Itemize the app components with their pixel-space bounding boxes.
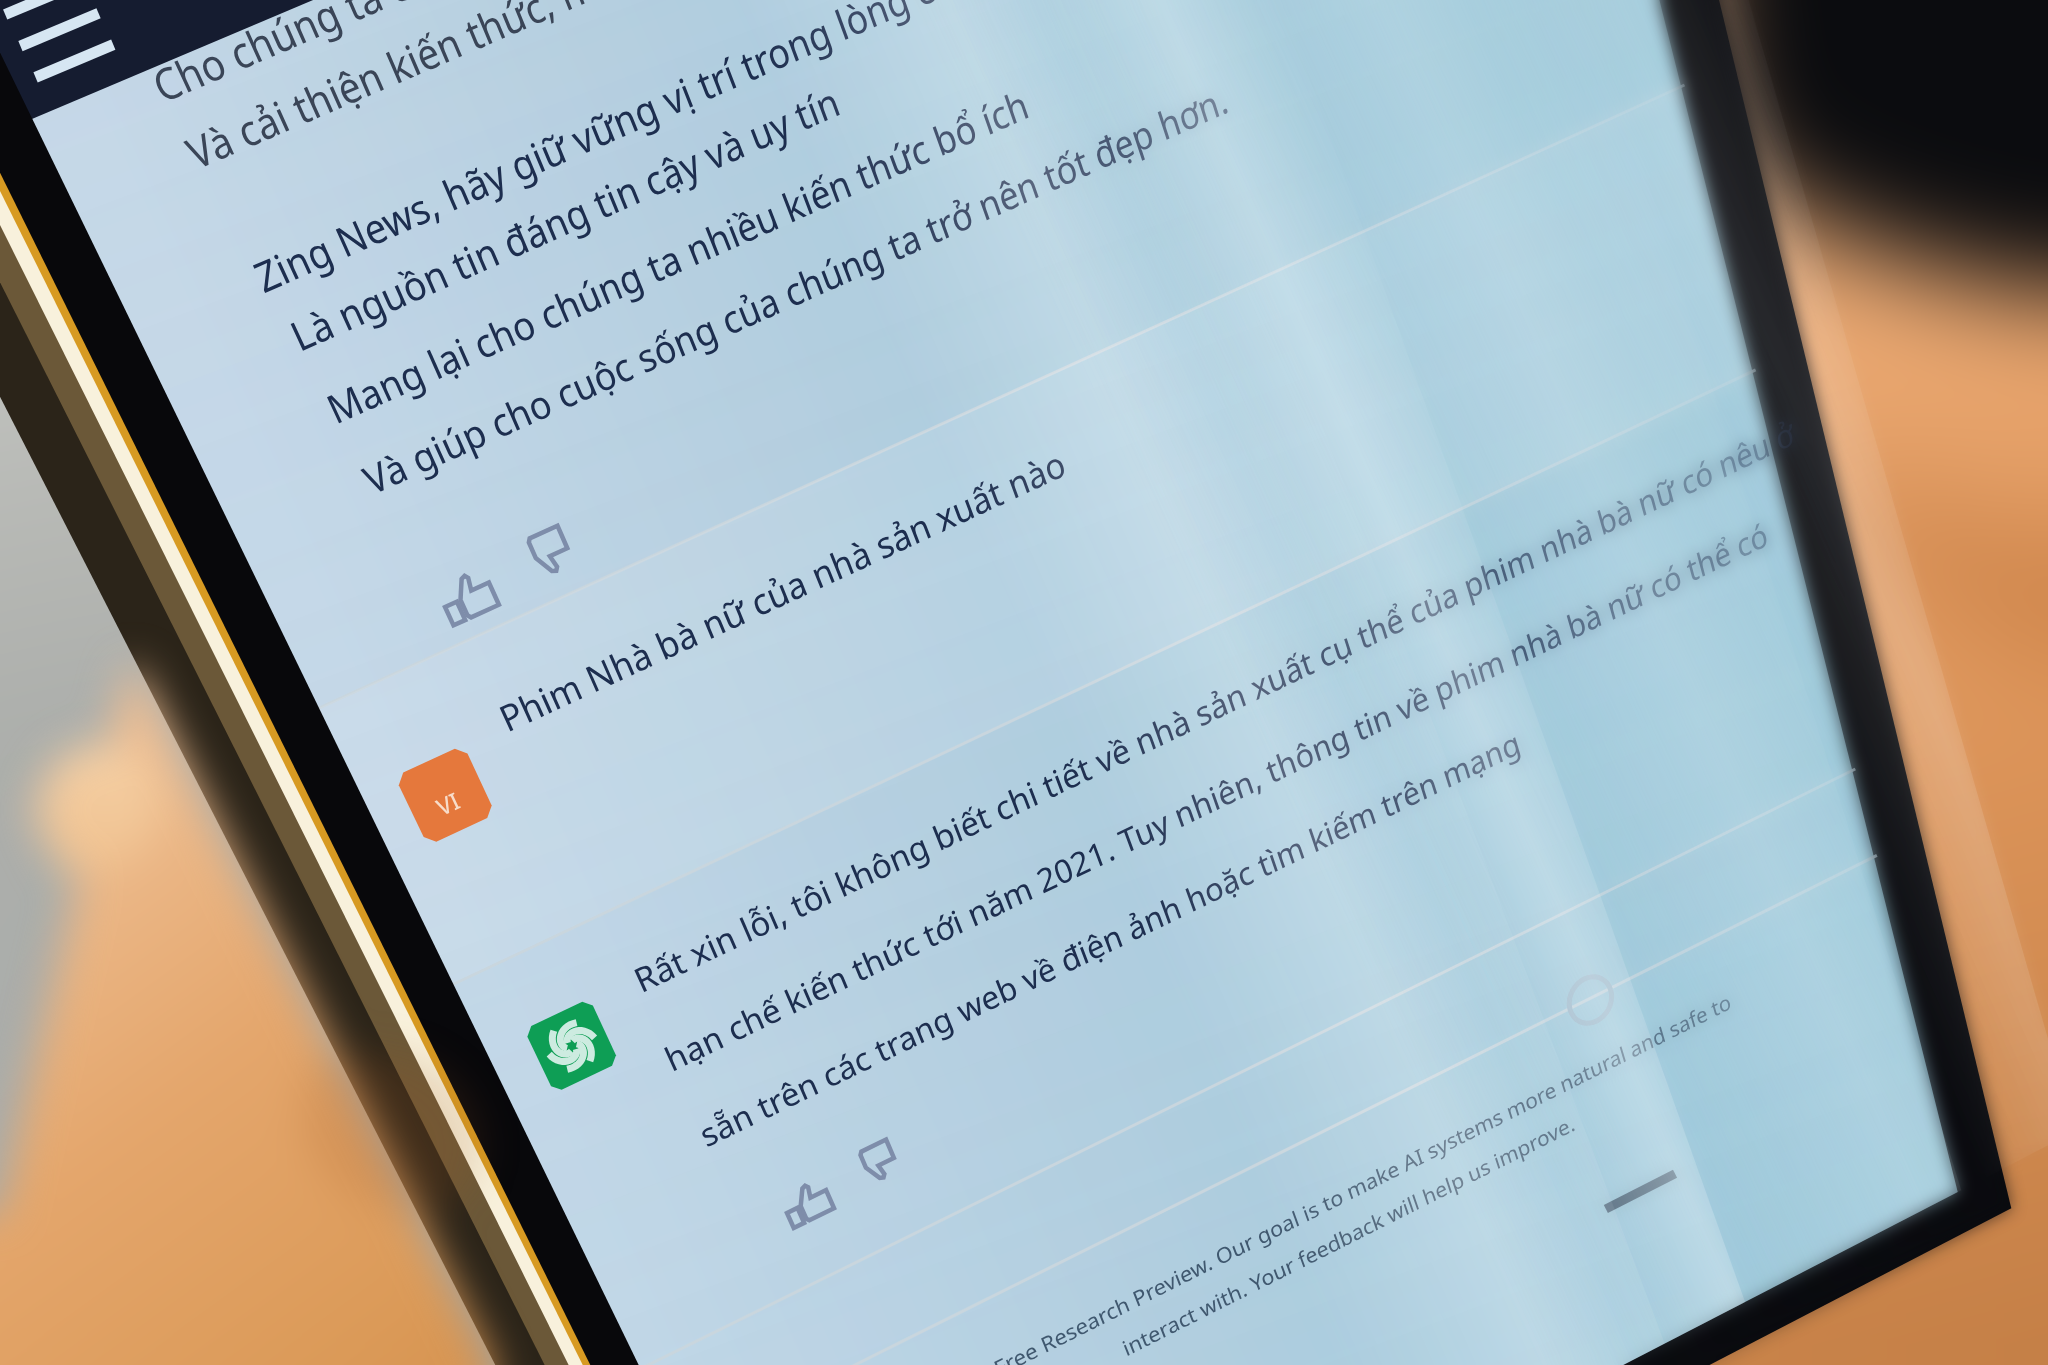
button[interactable]: ChatGPT conversation on a phone	[0, 0, 2048, 1365]
